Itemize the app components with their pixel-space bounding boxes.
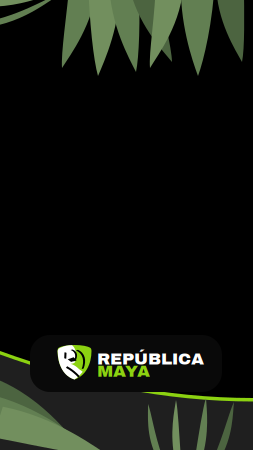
staticText: REPÚBLICA: [97, 350, 204, 368]
button[interactable]: REPÚBLICA: [30, 335, 222, 392]
staticText: MAYA: [97, 362, 150, 380]
